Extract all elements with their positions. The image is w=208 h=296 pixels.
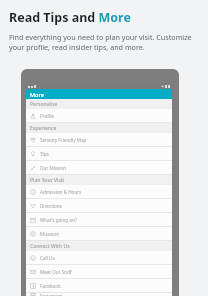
button[interactable]: Profile <box>26 109 172 123</box>
other: Museum <box>30 231 36 237</box>
other: Sensory Friendly Map <box>30 137 36 143</box>
staticText: Tips <box>40 151 49 157</box>
staticText: Read Tips and More <box>9 9 131 26</box>
button[interactable]: Facebook <box>26 279 172 293</box>
staticText: Profile <box>40 113 54 119</box>
button[interactable]: Sensory Friendly Map <box>26 133 172 147</box>
staticText: Call Us <box>40 255 55 261</box>
button[interactable]: Directions <box>26 199 172 213</box>
button[interactable]: What's going on? <box>26 213 172 227</box>
other: Our Mission <box>30 165 36 171</box>
staticText: Facebook <box>40 283 61 289</box>
staticText: Instagram <box>40 293 63 296</box>
other: What's going on? <box>30 217 36 223</box>
other: Admission & Hours <box>30 189 36 195</box>
other: Directions <box>30 203 36 209</box>
staticText: Connect With Us <box>30 243 70 250</box>
button[interactable]: Meet Our Staff <box>26 265 172 279</box>
staticText: Experience <box>30 125 57 132</box>
staticText: What's going on? <box>40 217 77 223</box>
other: Call Us <box>30 255 36 261</box>
button[interactable]: Call Us <box>26 251 172 265</box>
button[interactable]: More <box>26 89 172 99</box>
staticText: Admission & Hours <box>40 189 82 195</box>
staticText: Our Mission <box>40 165 67 171</box>
staticText: Meet Our Staff <box>40 269 72 275</box>
staticText: Directions <box>40 203 62 209</box>
staticText: Plan Your Visit <box>30 177 65 184</box>
button[interactable]: Tips <box>26 147 172 161</box>
other: Profile <box>30 113 36 119</box>
staticText: Sensory Friendly Map <box>40 137 87 143</box>
staticText: Find everything you need to plan your vi… <box>9 32 200 52</box>
other: Facebook <box>30 283 36 289</box>
staticText: Personalize <box>30 101 58 108</box>
other: Meet Our Staff <box>30 269 36 275</box>
button[interactable]: Instagram <box>26 293 172 296</box>
other: Tips <box>30 151 36 157</box>
button[interactable]: Admission & Hours <box>26 185 172 199</box>
button[interactable]: Our Mission <box>26 161 172 175</box>
other: Instagram <box>30 293 36 296</box>
button[interactable]: Museum <box>26 227 172 241</box>
staticText: Museum <box>40 231 59 237</box>
staticText: More <box>30 91 44 98</box>
